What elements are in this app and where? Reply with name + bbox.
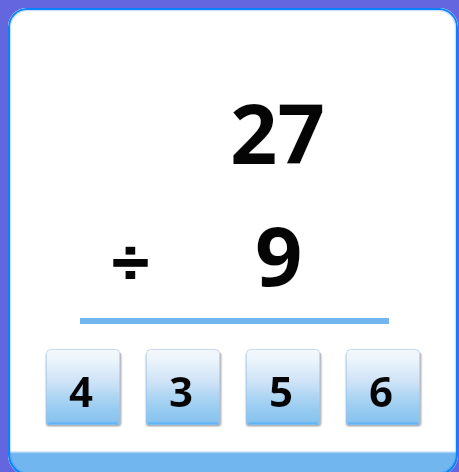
button[interactable]: Answer 4 [46,349,120,425]
staticText: 6 [369,362,394,419]
button[interactable]: Answer 6 [346,349,420,425]
staticText: 27 [230,75,325,188]
button[interactable]: Answer 3 [146,349,220,425]
staticText: 5 [269,362,294,419]
staticText: 3 [169,362,194,419]
staticText: 4 [69,362,94,419]
staticText: 9 [255,197,303,310]
button[interactable]: Answer 5 [246,349,320,425]
other: divided by [113,246,163,296]
